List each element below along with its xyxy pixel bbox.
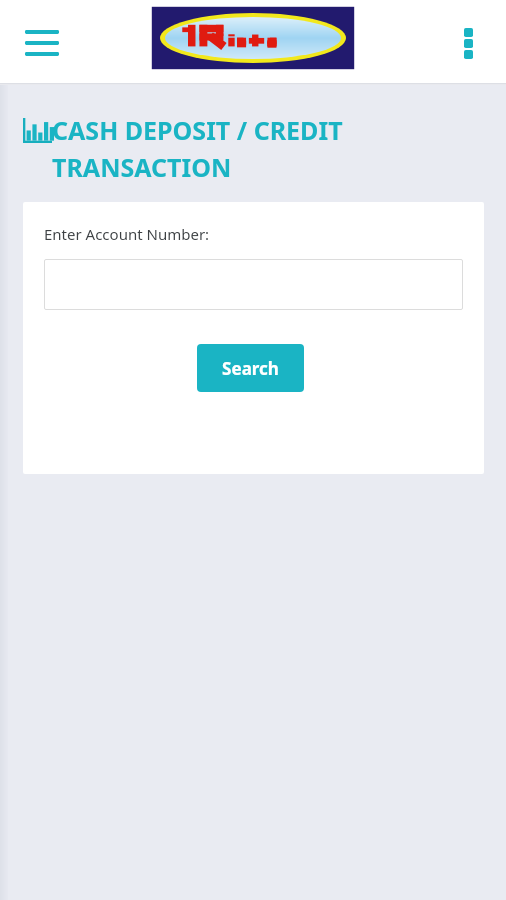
button[interactable]: More options	[442, 17, 494, 69]
staticText: Search	[222, 357, 279, 380]
button[interactable]: Search	[197, 344, 304, 392]
staticText: CASH DEPOSIT / CREDIT TRANSACTION	[52, 113, 484, 184]
button[interactable]: Account number input	[44, 259, 463, 310]
staticText: Enter Account Number:	[44, 224, 210, 244]
button[interactable]: Open navigation menu	[14, 15, 70, 71]
button[interactable]: Rista logo	[153, 8, 353, 68]
